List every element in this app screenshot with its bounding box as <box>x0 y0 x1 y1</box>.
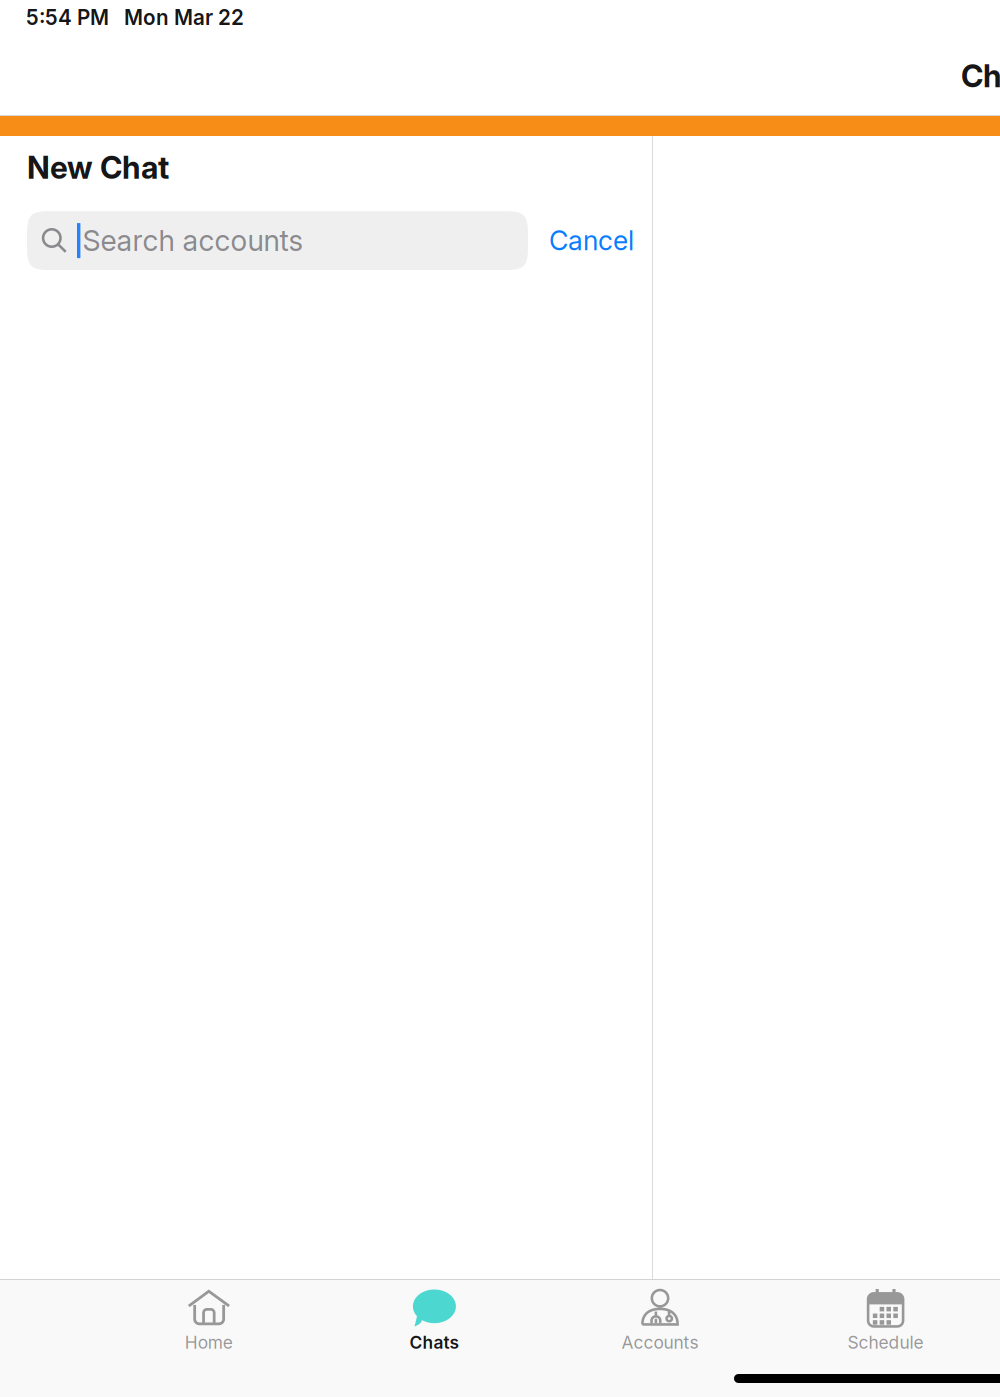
button[interactable]: Schedule <box>773 1279 998 1397</box>
staticText: Accounts <box>621 1332 698 1353</box>
staticText: New Chat <box>27 149 169 186</box>
staticText: Chats <box>961 57 1000 94</box>
staticText: Chats <box>409 1332 459 1353</box>
button[interactable]: Accounts <box>547 1279 773 1397</box>
staticText: Home <box>185 1332 233 1353</box>
button[interactable]: Home <box>96 1279 322 1397</box>
button[interactable]: Chats <box>322 1279 547 1397</box>
staticText: 5:54 PM Mon Mar 22 <box>26 5 244 30</box>
staticText: Schedule <box>848 1332 924 1353</box>
staticText: Cancel <box>549 224 634 257</box>
staticText: Search accounts <box>82 223 303 258</box>
button[interactable]: Search accounts <box>27 211 528 270</box>
button[interactable]: Cancel <box>528 211 648 270</box>
